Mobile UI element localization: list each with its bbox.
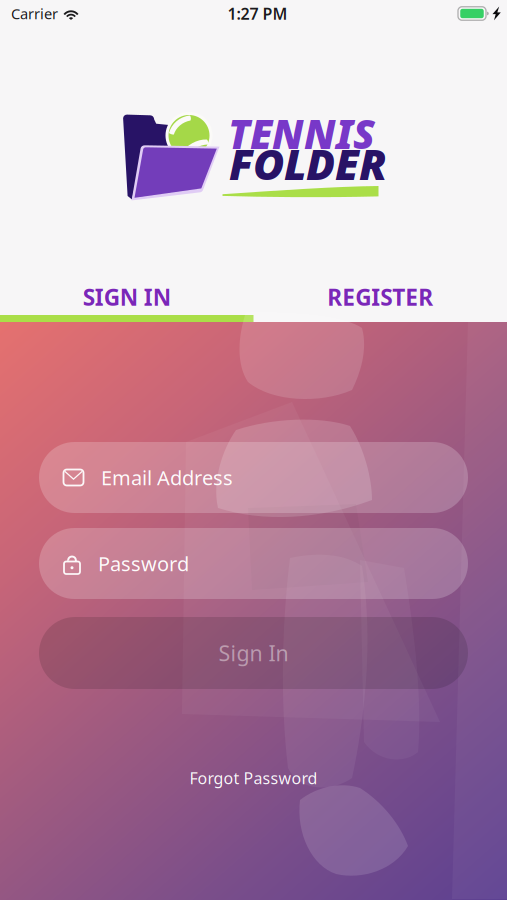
staticText: Carrier — [11, 4, 58, 23]
button[interactable]: Sign In — [39, 617, 468, 689]
button[interactable]: REGISTER — [253, 266, 507, 322]
staticText: Sign In — [218, 639, 288, 667]
staticText: TENNIS — [228, 107, 375, 160]
staticText: FOLDER — [229, 135, 387, 192]
staticText: REGISTER — [327, 282, 433, 312]
button[interactable]: SIGN IN — [0, 266, 253, 322]
staticText: Password — [98, 550, 189, 577]
staticText: SIGN IN — [83, 282, 171, 312]
staticText: Forgot Password — [189, 767, 317, 789]
button[interactable]: Forgot Password — [39, 763, 468, 793]
staticText: Email Address — [101, 464, 233, 491]
staticText: 1:27 PM — [227, 3, 287, 24]
